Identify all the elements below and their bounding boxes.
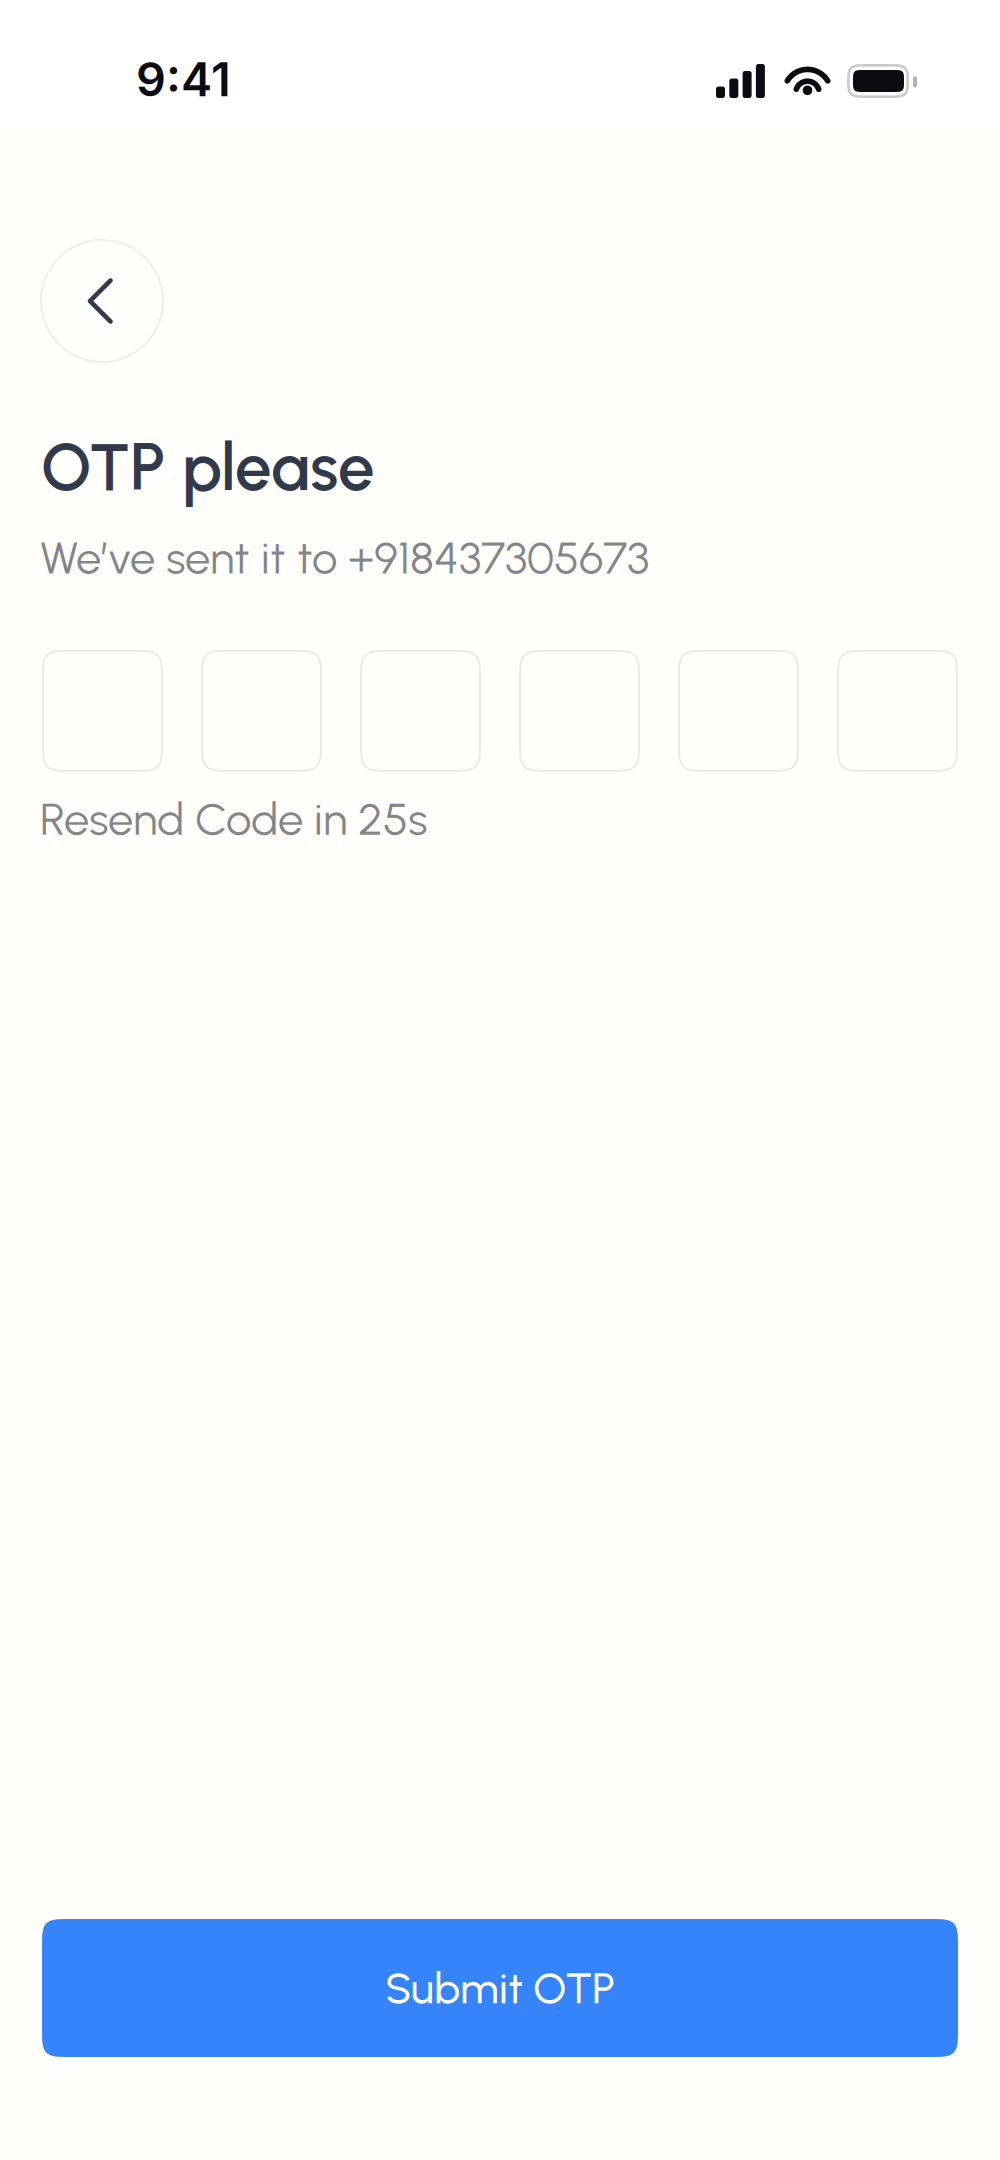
button[interactable]: OTP digit 4 (519, 650, 640, 772)
button[interactable]: OTP digit 5 (678, 650, 799, 772)
button[interactable]: OTP digit 6 (837, 650, 958, 772)
staticText: OTP please (41, 428, 375, 506)
button[interactable]: OTP digit 3 (360, 650, 481, 772)
button[interactable]: OTP digit 1 (42, 650, 163, 772)
staticText: Resend Code in 25s (40, 792, 427, 846)
button[interactable]: Submit OTP (42, 1919, 958, 2057)
staticText: Submit OTP (385, 1962, 615, 2014)
staticText: We’ve sent it to +918437305673 (40, 530, 649, 585)
staticText: 9:41 (136, 51, 231, 107)
button[interactable]: Resend Code in 25s (40, 792, 427, 846)
button[interactable]: OTP digit 2 (201, 650, 322, 772)
button[interactable]: Back (41, 240, 163, 362)
